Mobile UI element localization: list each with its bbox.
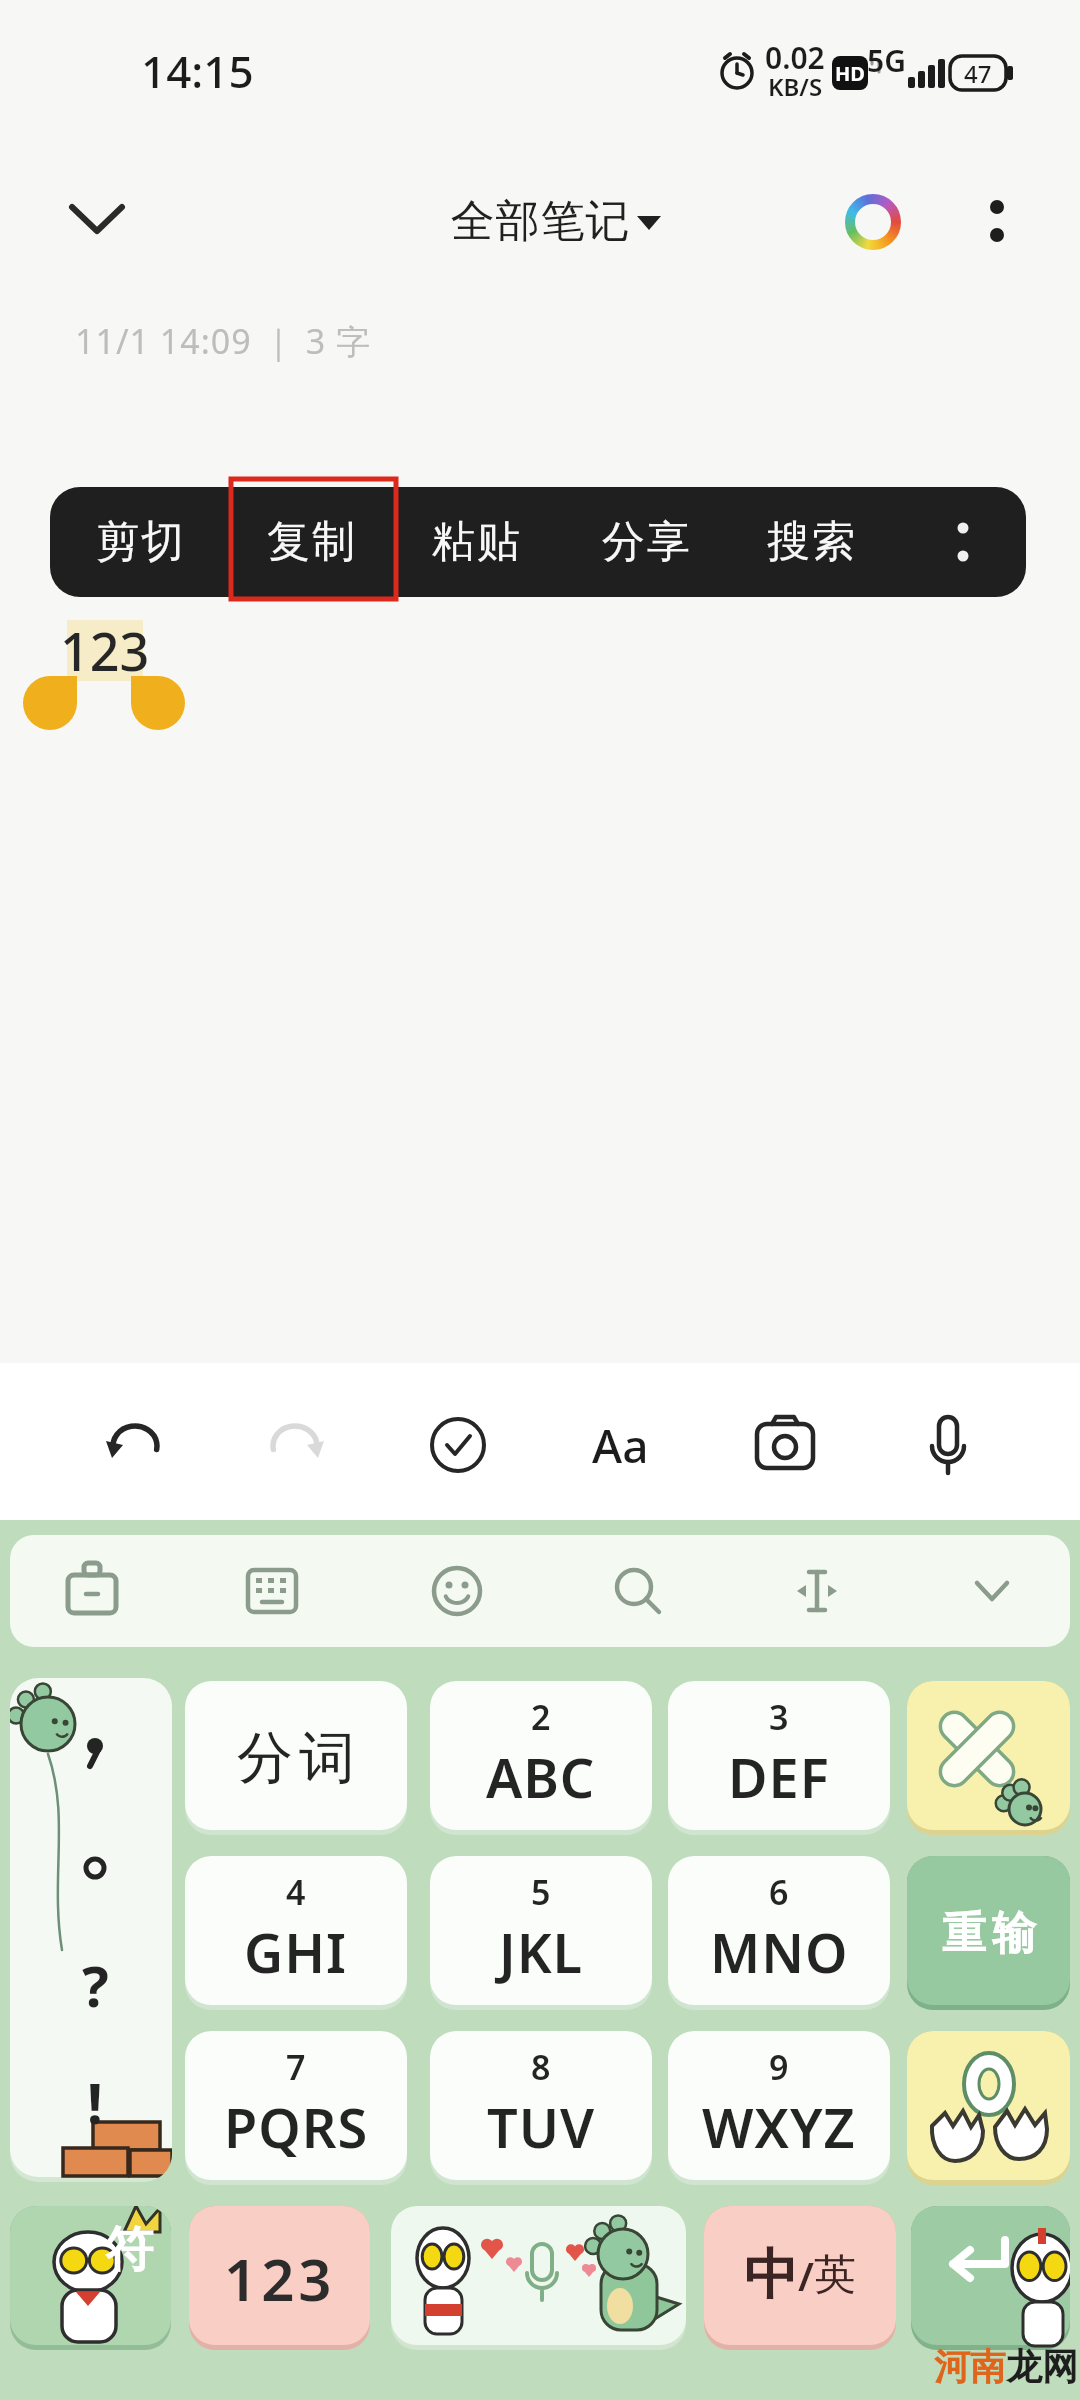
staticText: TUV (487, 2090, 596, 2164)
staticText: 中 (744, 2241, 798, 2309)
staticText: ! (87, 2064, 103, 2140)
button[interactable]: 粘贴 (406, 487, 546, 597)
staticText: 2 (531, 1694, 551, 1740)
staticText: 分词 (234, 1723, 358, 1794)
button[interactable] (907, 2031, 1070, 2185)
button[interactable]: 中 (704, 2206, 896, 2350)
button[interactable]: 3 (668, 1681, 890, 1835)
staticText: 复制 (266, 515, 356, 569)
button[interactable] (967, 190, 1027, 254)
button[interactable]: Aa (580, 1405, 660, 1485)
staticText: 7 (286, 2044, 306, 2090)
button[interactable]: 符 (10, 2206, 171, 2350)
button[interactable] (255, 1405, 335, 1485)
button[interactable]: 9 (668, 2031, 890, 2185)
button[interactable]: 剪切 (70, 487, 210, 597)
button[interactable]: 6 (668, 1856, 890, 2010)
staticText: MNO (710, 1915, 849, 1989)
staticText: Aa (592, 1414, 649, 1477)
button[interactable]: 分词 (185, 1681, 407, 1835)
staticText: 符 (105, 2220, 153, 2280)
staticText: KB/S (768, 70, 823, 103)
staticText: WXYZ (702, 2090, 856, 2164)
staticText: 分享 (601, 515, 691, 569)
staticText: 123 (60, 615, 150, 686)
staticText: DEF (728, 1740, 830, 1814)
staticText: 5 (531, 1869, 551, 1915)
staticText: 47 (964, 57, 992, 90)
staticText: GHI (244, 1915, 348, 1989)
button[interactable]: 123 (189, 2206, 370, 2350)
button[interactable] (745, 1405, 825, 1485)
staticText: 4 (286, 1869, 306, 1915)
button[interactable]: 分享 (576, 487, 716, 597)
staticText: 8 (531, 2044, 551, 2090)
staticText: 5G (867, 40, 906, 81)
staticText: 粘贴 (431, 515, 521, 569)
button[interactable]: 复制 (241, 487, 381, 597)
staticText: 123 (224, 2239, 336, 2318)
button[interactable] (52, 185, 142, 255)
staticText: 剪切 (95, 515, 185, 569)
button[interactable] (95, 1405, 175, 1485)
staticText: PQRS (224, 2090, 369, 2164)
staticText: JKL (499, 1915, 584, 1989)
button[interactable]: 重输 (907, 1856, 1070, 2010)
staticText: 搜索 (766, 515, 856, 569)
button[interactable] (911, 2206, 1070, 2350)
staticText: / (798, 2248, 814, 2302)
staticText: 14:15 (141, 41, 254, 101)
staticText: ABC (486, 1740, 596, 1814)
button[interactable] (908, 1405, 988, 1485)
staticText: 河南 (934, 2344, 1006, 2389)
button[interactable] (391, 2206, 686, 2350)
staticText: 3 (769, 1694, 789, 1740)
staticText: 6 (769, 1869, 789, 1915)
button[interactable]: 7 (185, 2031, 407, 2185)
staticText: 龙网 (1006, 2344, 1078, 2389)
button[interactable]: 2 (430, 1681, 652, 1835)
staticText: 11/1 14:09 ｜ 3 字 (75, 318, 372, 362)
staticText: ? (82, 1947, 109, 2023)
staticText: 0.02 (765, 37, 825, 78)
staticText: HD (835, 60, 865, 87)
button[interactable]: 5 (430, 1856, 652, 2010)
button[interactable]: 4 (185, 1856, 407, 2010)
button[interactable]: ? (10, 1678, 172, 2182)
button[interactable]: 全部笔记 (450, 190, 680, 252)
button[interactable] (907, 1681, 1070, 1835)
staticText: 9 (769, 2044, 789, 2090)
button[interactable] (845, 194, 901, 250)
button[interactable]: 搜索 (741, 487, 881, 597)
button[interactable] (918, 487, 1008, 597)
staticText: 英 (814, 2249, 856, 2302)
button[interactable]: 8 (430, 2031, 652, 2185)
staticText: 重输 (939, 1906, 1039, 1961)
staticText: 全部笔记 (450, 194, 630, 249)
button[interactable] (418, 1405, 498, 1485)
